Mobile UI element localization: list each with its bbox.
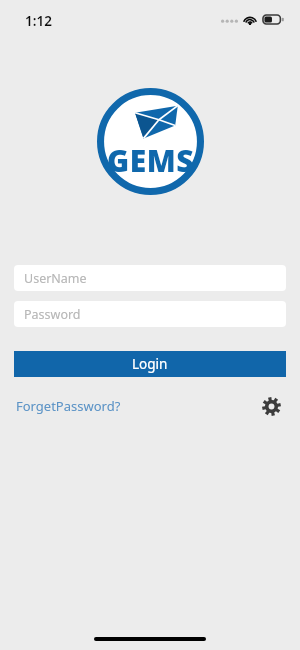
staticText: Login bbox=[132, 355, 168, 373]
button[interactable]: Login bbox=[14, 351, 286, 377]
staticText: UserName bbox=[24, 270, 87, 287]
staticText: Password bbox=[24, 306, 81, 323]
staticText: GEMS bbox=[107, 140, 194, 181]
button[interactable]: UserName bbox=[14, 265, 286, 291]
staticText: 1:12 bbox=[25, 12, 52, 30]
button[interactable]: ForgetPassword? bbox=[14, 393, 123, 419]
staticText: ForgetPassword? bbox=[16, 397, 121, 415]
button[interactable]: Settings bbox=[256, 391, 286, 421]
button[interactable]: Password bbox=[14, 301, 286, 327]
